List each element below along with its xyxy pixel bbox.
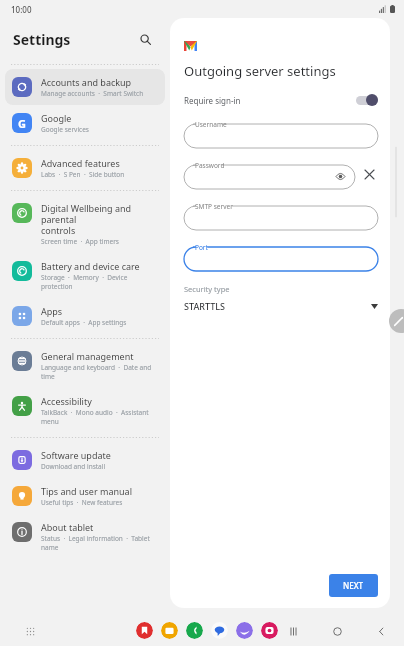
staticText: 10:00 [11,4,32,15]
button[interactable]: Apps [5,298,165,334]
staticText: Security type [184,284,230,294]
button[interactable]: Camera [261,622,278,639]
button[interactable]: Advanced features [5,150,165,186]
staticText: Port [195,243,208,252]
button[interactable]: General management [5,343,165,388]
button[interactable]: NEXT [329,574,378,597]
button[interactable]: STARTTLS [184,300,378,312]
staticText: Password [195,161,225,170]
button[interactable]: Edit [389,309,404,333]
button[interactable]: Username [184,118,378,148]
staticText: Digital Wellbeing and parental controls [41,202,159,236]
staticText: Accounts and backup [41,76,132,88]
staticText: Google [41,112,72,124]
staticText: Username [195,120,227,129]
staticText: Labs · S Pen · Side button [41,170,125,179]
button[interactable]: All apps [22,623,38,639]
staticText: Tips and user manual [41,485,132,497]
button[interactable]: Password [184,159,355,189]
button[interactable]: Accounts and backup [5,69,165,105]
button[interactable]: Show password [334,170,346,182]
staticText: Storage · Memory · Device protection [41,273,128,291]
staticText: G [18,116,26,131]
button[interactable]: Back [372,622,390,640]
staticText: Manage accounts · Smart Switch [41,89,144,98]
staticText: SMTP server [195,202,233,211]
button[interactable]: Clear password [360,165,378,183]
button[interactable]: Digital Wellbeing and parental controls [5,195,165,253]
staticText: Accessibility [41,395,92,407]
staticText: Require sign-in [184,95,356,106]
button[interactable]: G [5,105,165,141]
staticText: STARTTLS [184,300,371,312]
button[interactable]: Home [328,622,346,640]
staticText: Battery and device care [41,260,140,272]
staticText: Useful tips · New features [41,498,123,507]
button[interactable]: Recents [284,622,302,640]
button[interactable]: Search settings [134,28,156,50]
staticText: Settings [13,30,71,49]
staticText: Language and keyboard · Date and time [41,363,152,381]
button[interactable]: Messages [211,622,228,639]
staticText: Status · Legal information · Tablet name [41,534,150,552]
button[interactable]: Port [184,241,378,271]
button[interactable]: Tips and user manual [5,478,165,514]
staticText: Download and install [41,462,106,471]
staticText: Advanced features [41,157,120,169]
button[interactable]: Internet [236,622,253,639]
button[interactable]: SMTP server [184,200,378,230]
staticText: General management [41,350,134,362]
button[interactable]: Require sign-in [184,94,378,106]
button[interactable]: About tablet [5,514,165,559]
staticText: TalkBack · Mono audio · Assistant menu [41,408,149,426]
button[interactable]: Samsung Notes [136,622,153,639]
button[interactable]: Software update [5,442,165,478]
staticText: About tablet [41,521,94,533]
staticText: Apps [41,305,63,317]
staticText: Screen time · App timers [41,237,119,246]
button[interactable]: Battery and device care [5,253,165,298]
staticText: Google services [41,125,89,134]
staticText: Software update [41,449,111,461]
staticText: Default apps · App settings [41,318,127,327]
button[interactable]: Phone [186,622,203,639]
button[interactable]: Require sign-in toggle [356,94,378,106]
button[interactable]: Accessibility [5,388,165,433]
button[interactable]: My Files [161,622,178,639]
staticText: NEXT [343,580,364,591]
staticText: Outgoing server settings [184,62,336,80]
